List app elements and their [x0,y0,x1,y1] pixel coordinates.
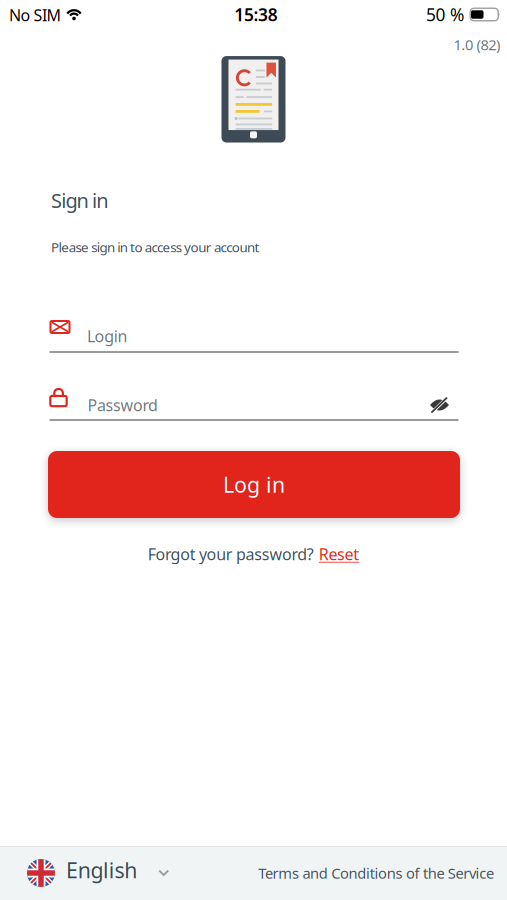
staticText: Please sign in to access your account [51,238,260,256]
button[interactable]: Terms and Conditions of the Service [258,863,494,883]
staticText: 1.0 (82) [453,35,500,54]
staticText: Login [87,325,127,347]
staticText: No SIM [9,4,61,26]
staticText: Forgot your password? [148,543,314,565]
button[interactable]: Log in [48,451,460,518]
staticText: English [66,856,137,884]
staticText: Terms and Conditions of the Service [258,863,494,883]
button[interactable]: Language: English [27,859,168,887]
staticText: 15:38 [234,3,278,26]
button[interactable]: Forgot your password? [148,543,359,565]
staticText: Log in [223,470,285,499]
staticText: Sign in [51,187,108,213]
staticText: Password [87,394,158,416]
staticText: 50 % [426,3,464,26]
staticText: Reset [319,543,359,565]
button[interactable]: Login [0,325,507,347]
button[interactable]: Show password [429,397,449,413]
button[interactable]: Password [0,394,507,416]
